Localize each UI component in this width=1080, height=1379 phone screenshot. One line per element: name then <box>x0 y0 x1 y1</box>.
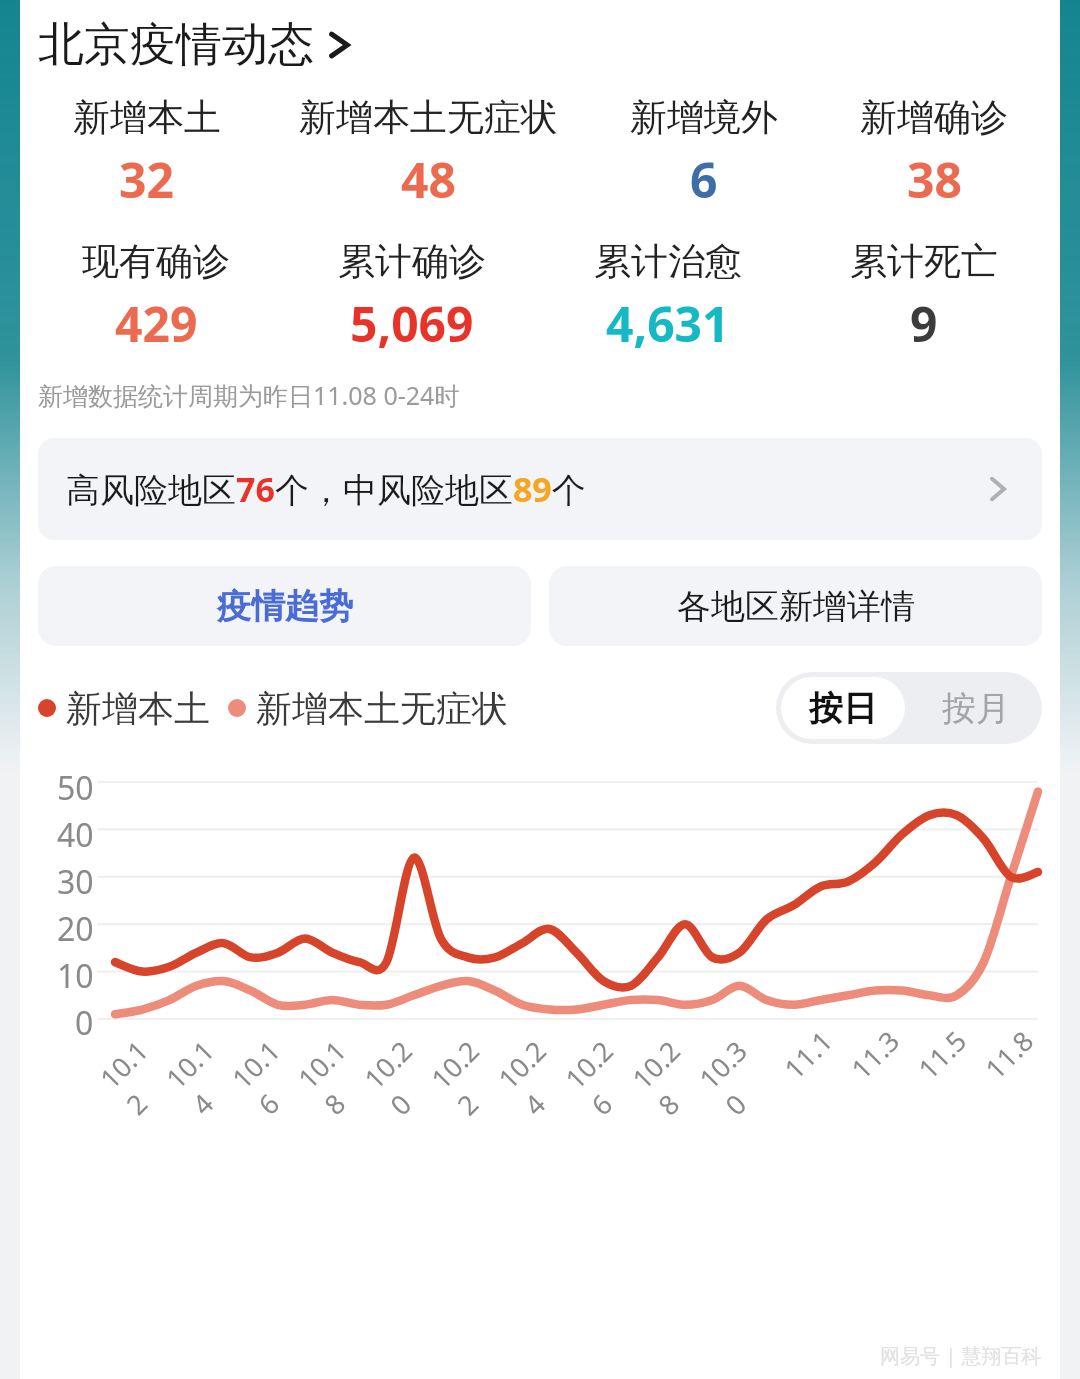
staticText: 0 <box>75 1001 94 1045</box>
button[interactable]: 新增境外 <box>591 94 816 212</box>
staticText: 4,631 <box>606 291 730 356</box>
staticText: 10.28 <box>624 1023 723 1123</box>
button[interactable]: 新增本土无症状 <box>265 94 591 212</box>
staticText: 48 <box>401 147 456 212</box>
staticText: 累计死亡 <box>850 238 998 285</box>
staticText: 11.3 <box>843 1022 907 1087</box>
staticText: 30 <box>57 860 94 904</box>
button[interactable]: 疫情趋势 <box>38 566 531 646</box>
staticText: 10.30 <box>691 1023 790 1123</box>
button[interactable]: 按日 <box>781 677 905 739</box>
staticText: 40 <box>57 813 94 857</box>
staticText: 累计治愈 <box>594 238 742 285</box>
staticText: 网易号 | 慧翔百科 <box>880 1342 1042 1369</box>
button[interactable]: 新增确诊 <box>816 94 1052 212</box>
button[interactable]: 新增本土 <box>28 94 265 212</box>
staticText: 累计确诊 <box>338 238 486 285</box>
other: Open Beijing epidemic details <box>328 28 352 62</box>
staticText: 新增本土无症状 <box>299 94 558 141</box>
staticText: 各地区新增详情 <box>677 585 915 628</box>
staticText: 10.18 <box>289 1023 388 1122</box>
staticText: 新增本土无症状 <box>256 686 508 731</box>
staticText: 38 <box>907 147 962 212</box>
staticText: 新增本土 <box>73 94 221 141</box>
button[interactable]: 北京疫情动态 <box>38 16 352 74</box>
staticText: 新增数据统计周期为昨日11.08 0-24时 <box>38 378 460 412</box>
staticText: 10 <box>57 954 94 998</box>
staticText: 10.20 <box>356 1023 455 1123</box>
staticText: 429 <box>115 291 198 356</box>
staticText: 新增确诊 <box>860 94 1008 141</box>
staticText: 按月 <box>942 687 1010 730</box>
staticText: 10.14 <box>157 1023 256 1122</box>
staticText: 现有确诊 <box>82 238 230 285</box>
button[interactable]: 各地区新增详情 <box>549 566 1042 646</box>
staticText: 新增境外 <box>630 94 778 141</box>
button[interactable]: 现有确诊 <box>28 238 284 356</box>
button[interactable]: 累计确诊 <box>284 238 540 356</box>
staticText: 高风险地区76个，中风险地区89个 <box>66 466 586 512</box>
staticText: 疫情趋势 <box>217 585 353 628</box>
staticText: 32 <box>119 147 174 212</box>
staticText: 11.8 <box>977 1022 1041 1087</box>
staticText: 10.12 <box>91 1023 190 1122</box>
staticText: 10.26 <box>557 1023 656 1123</box>
staticText: 6 <box>690 147 718 212</box>
button[interactable]: 累计死亡 <box>796 238 1052 356</box>
staticText: 10.22 <box>423 1023 522 1123</box>
staticText: 11.1 <box>776 1022 840 1087</box>
staticText: 北京疫情动态 <box>38 16 314 74</box>
staticText: 50 <box>57 766 94 810</box>
staticText: 9 <box>910 291 938 356</box>
staticText: 5,069 <box>350 291 474 356</box>
button[interactable]: 按月 <box>910 672 1042 744</box>
staticText: 10.16 <box>223 1023 322 1122</box>
staticText: 按日 <box>809 687 877 730</box>
staticText: 11.5 <box>910 1022 974 1087</box>
button[interactable]: 高风险地区76个，中风险地区89个 <box>38 438 1042 540</box>
staticText: 新增本土 <box>66 686 210 731</box>
staticText: 10.24 <box>490 1023 589 1123</box>
staticText: 20 <box>57 907 94 951</box>
button[interactable]: 累计治愈 <box>540 238 796 356</box>
